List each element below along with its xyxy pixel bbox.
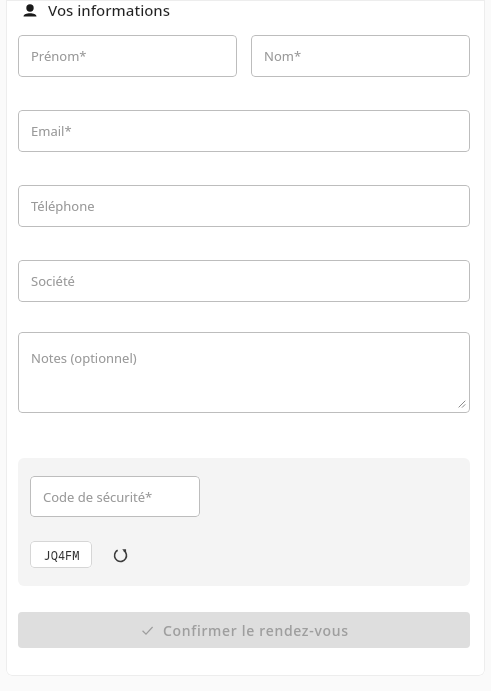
button[interactable]: Nom* [251,35,470,77]
button[interactable]: Prénom* [18,35,237,77]
staticText: Email* [31,122,72,140]
staticText: Prénom* [31,47,87,65]
button[interactable]: Notes (optionnel) [18,332,470,413]
staticText: Nom* [264,47,302,65]
button[interactable]: Rafraîchir le code [107,542,133,568]
button[interactable]: JQ4FM [30,541,92,568]
staticText: JQ4FM [43,547,80,563]
button[interactable]: Code de sécurité* [30,476,200,517]
staticText: Confirmer le rendez-vous [163,621,349,640]
button[interactable]: Société [18,260,470,302]
button[interactable]: Téléphone [18,185,470,227]
staticText: Société [31,272,75,290]
button[interactable]: Email* [18,110,470,152]
staticText: Vos informations [48,0,171,20]
staticText: Code de sécurité* [43,488,153,506]
staticText: Notes (optionnel) [31,349,137,367]
button[interactable]: Confirmer le rendez-vous [18,612,470,648]
staticText: Téléphone [31,197,95,215]
